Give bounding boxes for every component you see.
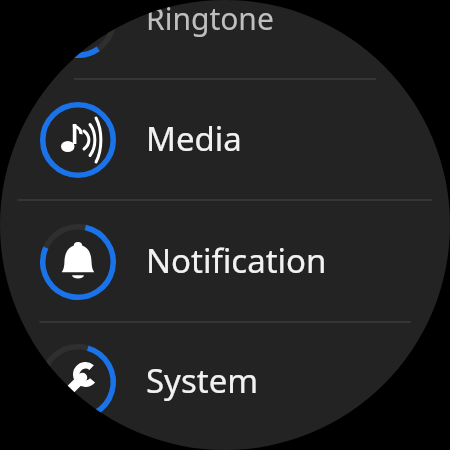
- other: Media: [0, 80, 450, 200]
- button[interactable]: Notification: [0, 202, 450, 322]
- other: Ringtone: [0, 0, 450, 80]
- staticText: System: [146, 358, 259, 403]
- staticText: Notification: [146, 238, 327, 283]
- button[interactable]: Ringtone: [0, 0, 450, 80]
- other: System: [0, 322, 450, 442]
- other: Notification: [0, 202, 450, 322]
- staticText: Ringtone: [146, 0, 274, 39]
- staticText: Media: [146, 116, 242, 161]
- button[interactable]: System: [0, 322, 450, 442]
- button[interactable]: Media: [0, 80, 450, 200]
